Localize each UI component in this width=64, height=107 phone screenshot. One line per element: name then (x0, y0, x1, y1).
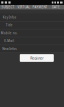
staticText: PAYMENT (32, 5, 47, 9)
button[interactable]: Mobile no. (0, 29, 64, 37)
staticText: Key Infos (3, 15, 16, 19)
staticText: E-Mail (4, 39, 14, 43)
button[interactable]: New Infos (0, 45, 64, 53)
button[interactable]: Title (0, 21, 64, 29)
staticText: SUBJECT (1, 5, 14, 9)
button[interactable]: Register (20, 54, 54, 62)
staticText: Mobile no. (1, 31, 18, 35)
button[interactable]: Key Infos (0, 13, 64, 21)
button[interactable]: VIRTUAL (16, 5, 32, 9)
staticText: VIRTUAL (17, 5, 30, 9)
staticText: Register (30, 55, 43, 60)
button[interactable]: PAYMENT (32, 5, 48, 9)
button[interactable]: DATE (48, 5, 64, 9)
button[interactable]: E-Mail (0, 37, 64, 45)
staticText: Title (6, 23, 13, 27)
button[interactable]: SUBJECT (0, 5, 16, 9)
staticText: DATE (52, 5, 60, 9)
staticText: New Infos (2, 47, 16, 51)
